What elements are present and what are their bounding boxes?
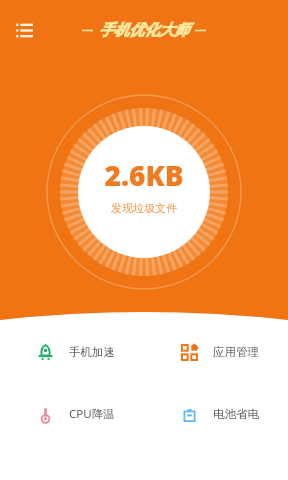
staticText: 电池省电 — [213, 407, 259, 421]
button[interactable]: 手机加速 — [0, 330, 144, 374]
staticText: 2.6KB — [104, 156, 184, 194]
staticText: 应用管理 — [213, 345, 259, 359]
button[interactable]: 电池省电 — [144, 392, 288, 436]
staticText: 手机优化大师 — [99, 21, 189, 40]
button[interactable]: Menu — [6, 12, 42, 48]
button[interactable]: CPU降温 — [0, 392, 144, 436]
button[interactable]: 应用管理 — [144, 330, 288, 374]
staticText: 发现垃圾文件 — [111, 201, 177, 215]
staticText: 手机加速 — [69, 345, 115, 359]
staticText: CPU降温 — [69, 406, 115, 422]
